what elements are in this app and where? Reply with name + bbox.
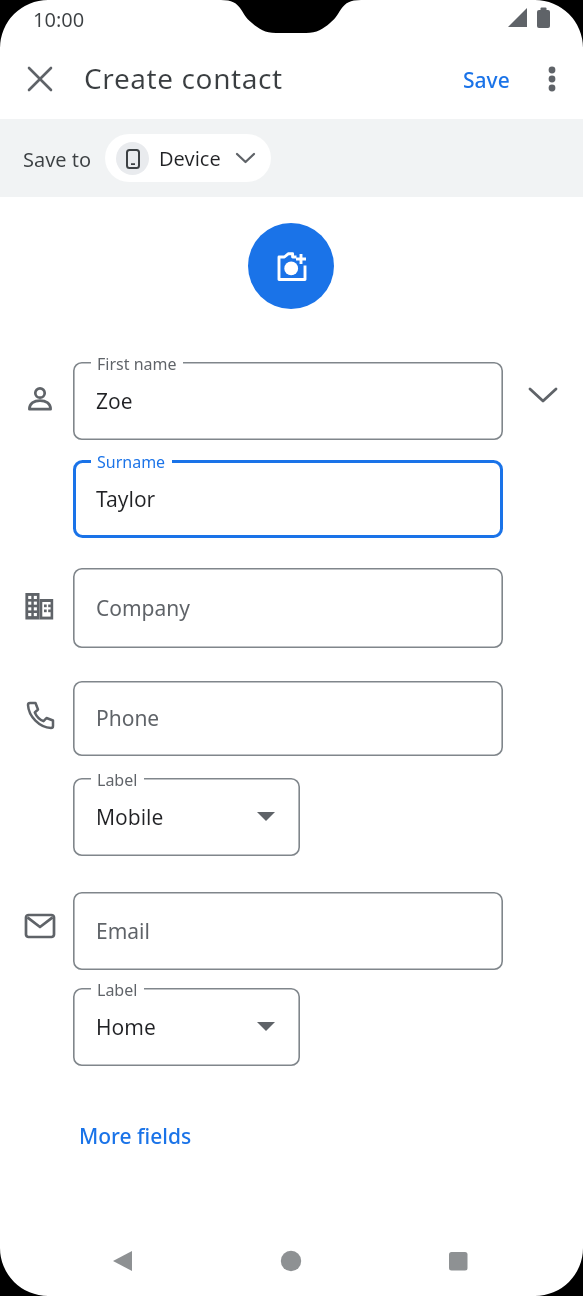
button[interactable]: Device bbox=[105, 134, 271, 182]
staticText: Device bbox=[159, 145, 221, 172]
staticText: Zoe bbox=[96, 387, 133, 416]
staticText: Email bbox=[96, 917, 150, 946]
staticText: Company bbox=[96, 594, 190, 623]
button[interactable]: Zoe bbox=[73, 362, 503, 440]
button[interactable] bbox=[271, 1242, 311, 1282]
button[interactable] bbox=[248, 223, 334, 309]
staticText: Taylor bbox=[96, 485, 156, 514]
staticText: Create contact bbox=[84, 59, 283, 97]
staticText: 10:00 bbox=[33, 6, 85, 33]
staticText: Label bbox=[97, 769, 138, 791]
button[interactable]: Mobile bbox=[73, 778, 300, 856]
staticText: Save to bbox=[23, 146, 92, 173]
button[interactable]: Phone bbox=[73, 681, 503, 756]
staticText: Phone bbox=[96, 704, 160, 733]
button[interactable] bbox=[536, 60, 568, 96]
staticText: Home bbox=[96, 1013, 156, 1042]
button[interactable]: Taylor bbox=[73, 460, 503, 538]
staticText: More fields bbox=[79, 1122, 192, 1151]
staticText: Mobile bbox=[96, 803, 164, 832]
staticText: First name bbox=[97, 353, 177, 375]
button[interactable] bbox=[22, 61, 58, 97]
button[interactable]: Email bbox=[73, 892, 503, 970]
button[interactable] bbox=[522, 375, 564, 415]
button[interactable]: Company bbox=[73, 568, 503, 648]
button[interactable]: Home bbox=[73, 988, 300, 1066]
staticText: Save bbox=[463, 66, 510, 95]
button[interactable]: More fields bbox=[79, 1122, 192, 1151]
staticText: Surname bbox=[97, 451, 166, 473]
button[interactable] bbox=[103, 1242, 143, 1282]
button[interactable] bbox=[438, 1242, 478, 1282]
staticText: Label bbox=[97, 979, 138, 1001]
button[interactable]: Save bbox=[463, 66, 510, 95]
